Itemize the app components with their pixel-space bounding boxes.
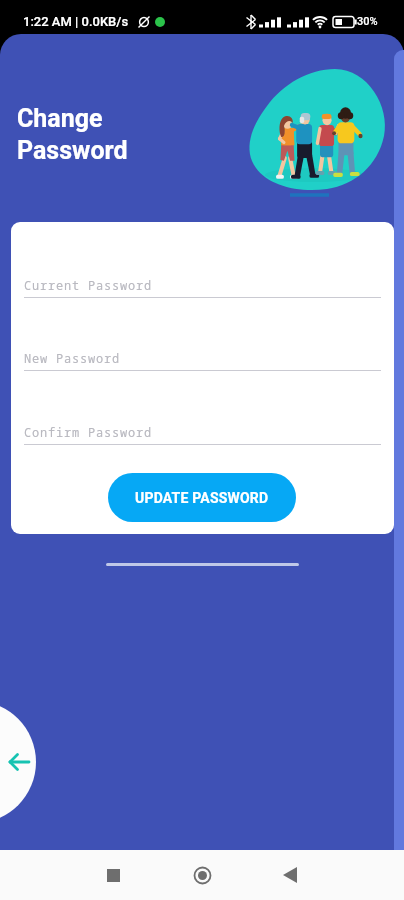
button[interactable]: Current Password — [24, 277, 381, 305]
staticText: Confirm Password — [24, 424, 153, 440]
staticText: UPDATE PASSWORD — [135, 490, 269, 506]
staticText: New Password — [24, 350, 121, 366]
button[interactable]: Back — [257, 850, 323, 900]
button[interactable]: Back — [0, 701, 36, 823]
button[interactable]: Recents — [80, 850, 146, 900]
button[interactable]: UPDATE PASSWORD — [108, 473, 296, 522]
button[interactable]: Home — [169, 850, 235, 900]
button[interactable]: Confirm Password — [24, 424, 381, 452]
staticText: 1:22 AM | 0.0KB/s — [23, 14, 129, 29]
button[interactable]: New Password — [24, 350, 381, 378]
staticText: Change Password — [17, 104, 128, 165]
staticText: Current Password — [24, 277, 153, 293]
staticText: 30% — [357, 15, 378, 28]
